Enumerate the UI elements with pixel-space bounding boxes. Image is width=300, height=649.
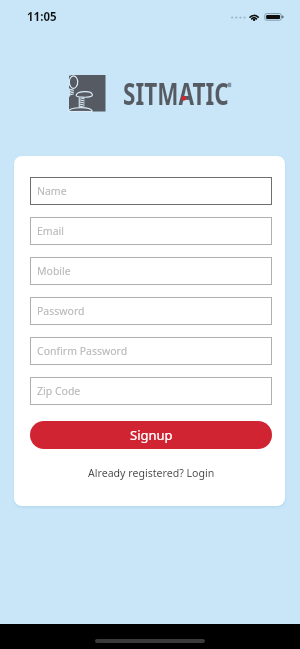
staticText: Mobile (37, 264, 71, 278)
staticText: Name (37, 184, 67, 198)
button[interactable]: Name (30, 177, 272, 205)
staticText: Email (37, 224, 64, 238)
staticText: Signup (130, 426, 173, 444)
staticText: SITMATIC (123, 72, 229, 108)
button[interactable]: Signup (30, 421, 272, 449)
button[interactable]: Already registered? Login (30, 464, 272, 482)
staticText: 11:05 (27, 9, 57, 25)
button[interactable]: Email (30, 217, 272, 245)
button[interactable]: Zip Code (30, 377, 272, 405)
button[interactable]: Confirm Password (30, 337, 272, 365)
staticText: Already registered? Login (88, 466, 215, 480)
button[interactable]: Mobile (30, 257, 272, 285)
staticText: Confirm Password (37, 344, 128, 358)
staticText: Password (37, 304, 85, 318)
button[interactable]: Password (30, 297, 272, 325)
staticText: Zip Code (37, 384, 81, 398)
